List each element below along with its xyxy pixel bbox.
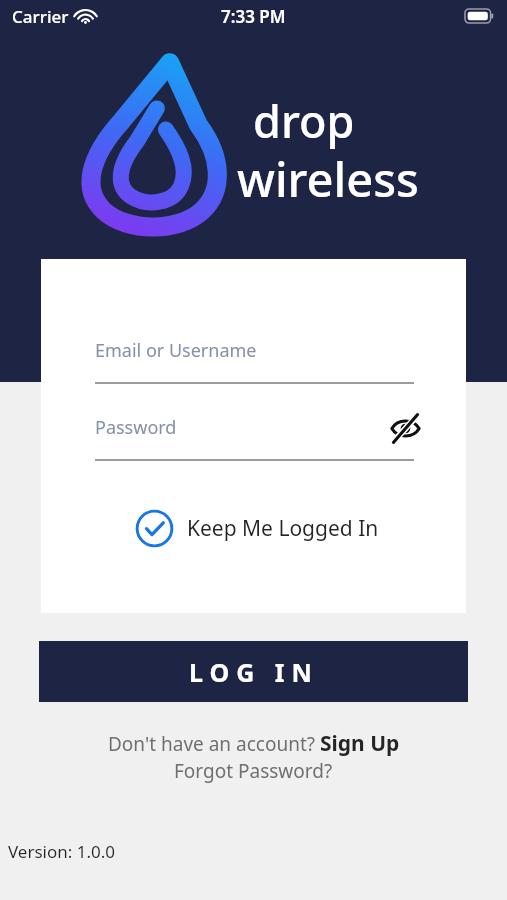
staticText: Email or Username — [95, 338, 257, 363]
button[interactable]: Show password — [384, 407, 426, 449]
staticText: 7:33 PM — [221, 5, 286, 28]
staticText: Version: 1.0.0 — [8, 840, 116, 863]
staticText: Password — [95, 415, 177, 440]
staticText: wireless — [237, 147, 419, 211]
staticText: Forgot Password? — [174, 758, 333, 784]
staticText: Sign Up — [320, 729, 400, 758]
button[interactable]: Keep Me Logged In — [135, 509, 379, 548]
staticText: drop — [253, 90, 355, 151]
button[interactable]: Email or Username — [95, 338, 414, 384]
button[interactable]: Password — [95, 415, 414, 461]
staticText: Don't have an account? — [108, 731, 320, 757]
staticText: Keep Me Logged In — [187, 514, 379, 543]
button[interactable]: Forgot Password? — [174, 758, 333, 784]
staticText: Carrier — [12, 5, 69, 28]
button[interactable]: Sign Up — [320, 729, 400, 758]
button[interactable]: LOG IN — [39, 641, 468, 702]
staticText: LOG IN — [189, 655, 319, 689]
